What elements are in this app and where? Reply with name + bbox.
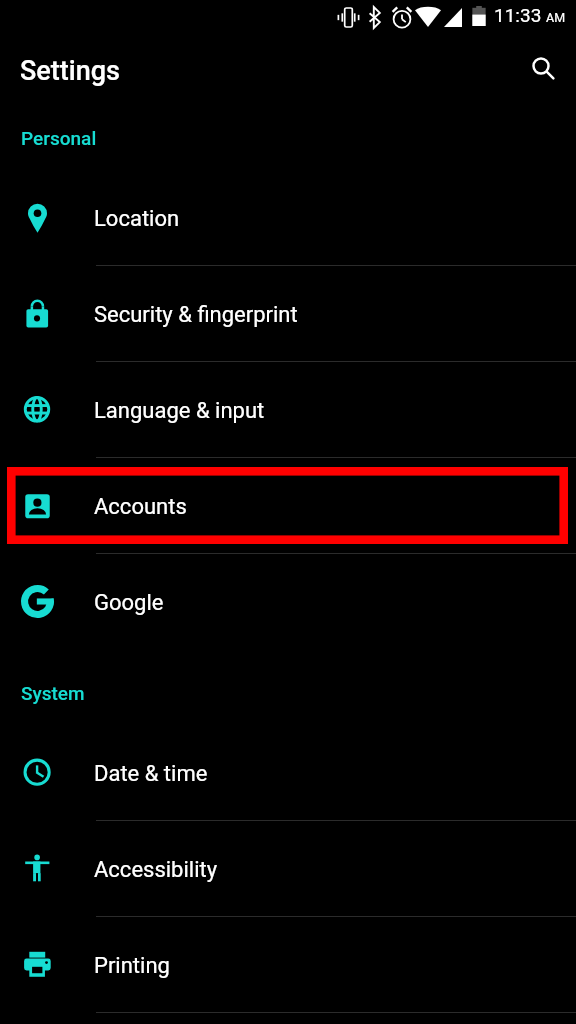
staticText: Settings [20,55,120,87]
button[interactable]: Google [0,553,576,649]
staticText: Accessibility [94,857,218,883]
button[interactable]: Location [0,169,576,265]
staticText: Location [94,206,180,232]
staticText: Personal [21,127,97,149]
staticText: Printing [94,953,170,979]
button[interactable]: Accessibility [0,820,576,916]
staticText: Security & fingerprint [94,302,298,328]
staticText: Accounts [94,494,187,520]
staticText: 11:33 [494,4,542,26]
staticText: Date & time [94,761,208,787]
button[interactable]: Security & fingerprint [0,265,576,361]
button[interactable]: Date & time [0,724,576,820]
button[interactable]: Search [517,42,565,90]
button[interactable]: Printing [0,916,576,1012]
button[interactable]: Accounts [0,457,576,553]
staticText: Language & input [94,398,265,424]
staticText: System [21,682,85,704]
button[interactable]: Language & input [0,361,576,457]
staticText: AM [546,10,566,25]
staticText: Google [94,590,164,616]
